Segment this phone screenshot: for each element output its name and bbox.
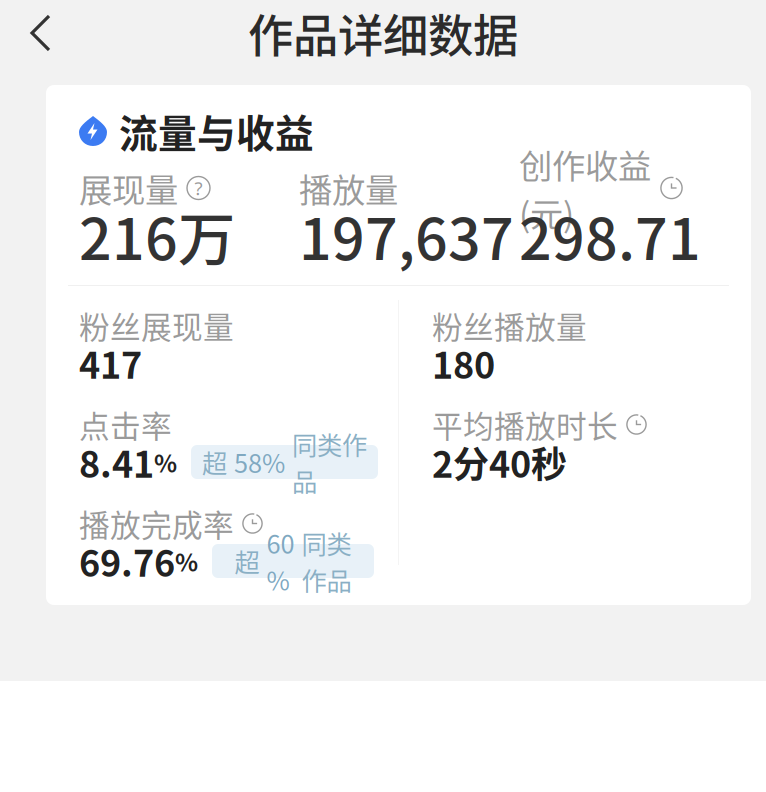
staticText: 播放量 bbox=[299, 164, 398, 212]
staticText: 417 bbox=[79, 337, 142, 389]
staticText: 197,637 bbox=[299, 193, 514, 276]
staticText: 58% bbox=[234, 444, 285, 480]
button[interactable]: Back bbox=[6, 0, 76, 68]
staticText: 平均播放时长 bbox=[432, 402, 618, 447]
staticText: 点击率 bbox=[79, 402, 172, 447]
staticText: 69.76 bbox=[79, 535, 175, 587]
staticText: 粉丝展现量 bbox=[79, 303, 234, 348]
staticText: % bbox=[154, 445, 177, 479]
staticText: 216万 bbox=[79, 193, 235, 276]
staticText: % bbox=[175, 544, 198, 578]
staticText: 180 bbox=[432, 337, 495, 389]
staticText: 8.41 bbox=[79, 436, 154, 488]
staticText: 粉丝播放量 bbox=[432, 303, 587, 348]
staticText: 作品详细数据 bbox=[248, 0, 518, 66]
staticText: 2分40秒 bbox=[432, 436, 567, 488]
staticText: 流量与收益 bbox=[119, 103, 314, 159]
staticText: 创作收益(元) bbox=[519, 140, 651, 236]
staticText: 展现量 bbox=[79, 164, 178, 212]
staticText: 同类作品 bbox=[301, 524, 351, 598]
staticText: 298.71 bbox=[519, 193, 701, 276]
staticText: 超 bbox=[234, 543, 259, 579]
staticText: 60% bbox=[266, 524, 294, 598]
staticText: ? bbox=[194, 176, 202, 200]
staticText: 播放完成率 bbox=[79, 501, 234, 546]
staticText: 超 bbox=[202, 444, 227, 480]
staticText: 同类作品 bbox=[292, 425, 367, 499]
